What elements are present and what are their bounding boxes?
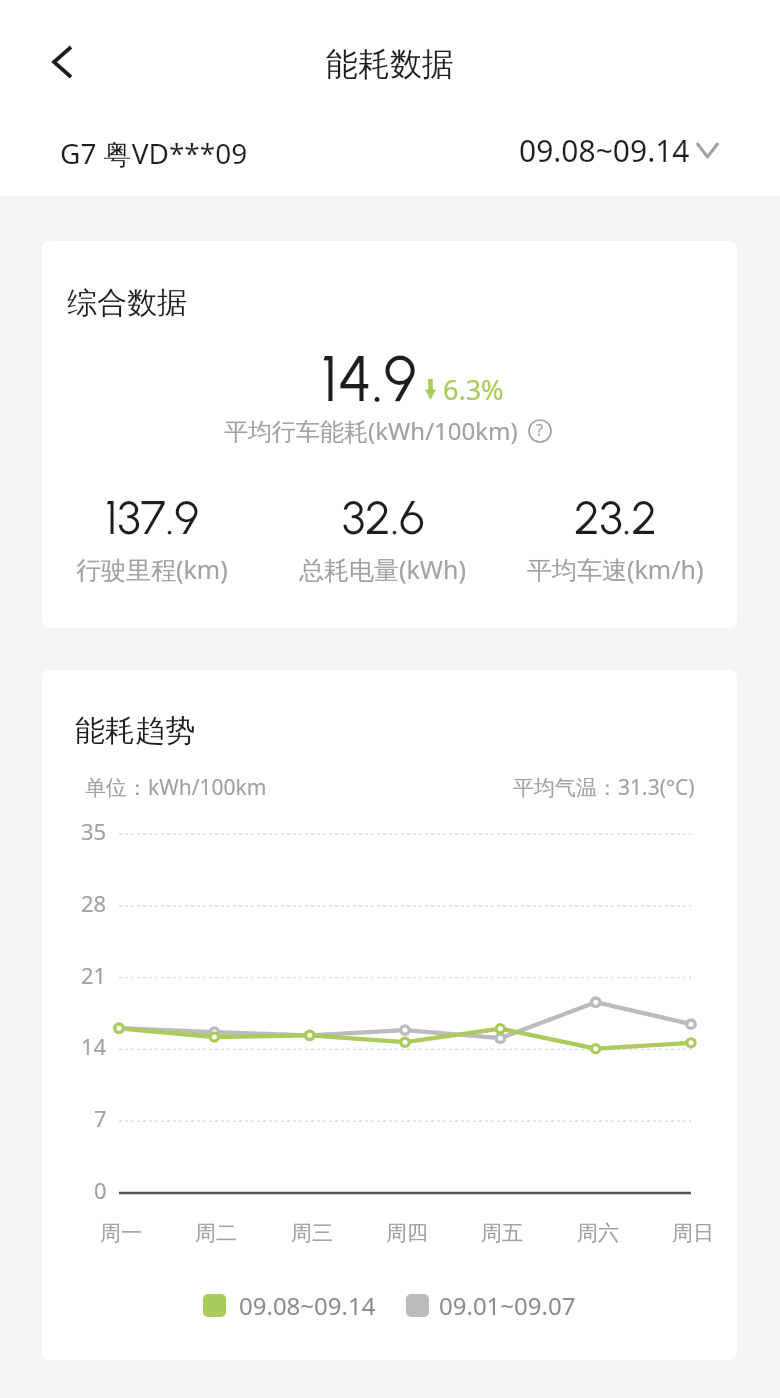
staticText: 单位：kWh/100km bbox=[85, 773, 267, 802]
button[interactable]: 09.01~09.07 bbox=[406, 1289, 576, 1322]
staticText: 23.2 bbox=[574, 489, 657, 545]
staticText: 周六 bbox=[577, 1220, 619, 1246]
staticText: 0 bbox=[94, 1175, 107, 1205]
button[interactable]: 137.9 bbox=[42, 489, 267, 586]
staticText: 32.6 bbox=[342, 489, 425, 545]
staticText: 6.3% bbox=[443, 371, 504, 408]
button[interactable]: Help bbox=[527, 418, 552, 443]
staticText: 周日 bbox=[672, 1220, 714, 1246]
staticText: 137.9 bbox=[105, 489, 199, 545]
staticText: 行驶里程(km) bbox=[76, 552, 228, 586]
staticText: G7 粤VD***09 bbox=[60, 134, 248, 172]
staticText: 09.08~09.14 bbox=[519, 130, 690, 171]
staticText: 周二 bbox=[195, 1220, 237, 1246]
staticText: 平均车速(km/h) bbox=[527, 552, 704, 586]
staticText: 平均行车能耗(kWh/100km) bbox=[224, 414, 518, 447]
staticText: 总耗电量(kWh) bbox=[299, 552, 467, 586]
button[interactable]: 09.08~09.14 bbox=[513, 124, 725, 177]
staticText: ? bbox=[536, 419, 543, 441]
staticText: 14 bbox=[81, 1031, 107, 1061]
staticText: 能耗趋势 bbox=[75, 712, 195, 750]
staticText: 周三 bbox=[291, 1220, 333, 1246]
staticText: 09.01~09.07 bbox=[439, 1289, 576, 1322]
staticText: 周一 bbox=[100, 1220, 142, 1246]
staticText: 能耗数据 bbox=[326, 44, 454, 84]
staticText: 平均气温：31.3(°C) bbox=[513, 773, 695, 802]
staticText: 28 bbox=[81, 888, 107, 918]
staticText: 21 bbox=[81, 960, 107, 990]
button[interactable]: 32.6 bbox=[267, 489, 499, 586]
staticText: 35 bbox=[81, 816, 107, 846]
staticText: 7 bbox=[94, 1103, 107, 1133]
staticText: 综合数据 bbox=[67, 284, 187, 322]
button[interactable]: Back bbox=[24, 24, 100, 100]
staticText: 周五 bbox=[481, 1220, 523, 1246]
button[interactable]: 23.2 bbox=[499, 489, 731, 586]
button[interactable]: 09.08~09.14 bbox=[203, 1289, 376, 1322]
staticText: 周四 bbox=[386, 1220, 428, 1246]
staticText: 09.08~09.14 bbox=[239, 1289, 376, 1322]
staticText: 14.9 bbox=[321, 341, 417, 417]
